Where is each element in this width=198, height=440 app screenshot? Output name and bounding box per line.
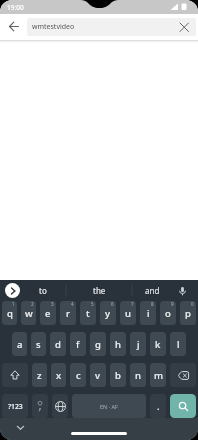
button[interactable]: c [70,363,86,387]
button[interactable]: g [90,332,106,356]
staticText: ?123 [8,402,23,411]
button[interactable]: p [180,301,196,325]
staticText: d [55,338,61,351]
button[interactable] [13,421,28,436]
button[interactable]: ?123 [2,394,28,418]
button[interactable]: EN · AF [72,394,146,418]
button[interactable]: v [90,363,106,387]
staticText: s [36,338,41,351]
button[interactable]: a [12,332,27,356]
button[interactable]: wmtestvideo [27,18,196,36]
button[interactable]: s [31,332,46,356]
staticText: r [66,307,71,320]
button[interactable]: x [51,363,66,387]
button[interactable]: the [66,280,132,301]
staticText: 9 [171,301,174,307]
staticText: and [145,285,160,296]
button[interactable]: f [70,332,86,356]
staticText: b [115,369,121,382]
staticText: z [37,369,42,382]
button[interactable]: r [60,301,76,325]
button[interactable]: m [150,363,166,387]
button[interactable] [5,283,20,298]
staticText: 2 [31,301,34,307]
button[interactable]: and [132,280,172,301]
staticText: p [185,307,191,320]
staticText: q [7,307,13,320]
staticText: l [177,338,180,351]
button[interactable]: u [120,301,136,325]
staticText: to [39,285,47,296]
staticText: e [45,307,51,320]
staticText: 5 [91,301,94,307]
staticText: w [25,307,33,320]
button[interactable] [170,394,196,418]
staticText: 0 [191,301,194,307]
button[interactable]: t [80,301,96,325]
button[interactable]: to [20,280,66,301]
staticText: 19:00 [7,3,24,12]
staticText: g [95,338,101,351]
staticText: x [56,369,62,382]
staticText: k [155,338,161,351]
staticText: i [147,307,150,320]
button[interactable] [32,394,48,418]
staticText: t [86,307,90,320]
staticText: EN · AF [100,403,118,410]
staticText: n [135,369,141,382]
button[interactable]: w [21,301,36,325]
staticText: m [154,369,163,382]
button[interactable]: j [130,332,146,356]
staticText: h [115,338,121,351]
staticText: y [105,307,111,320]
button[interactable]: k [150,332,166,356]
staticText: a [17,338,23,351]
staticText: c [76,369,81,382]
button[interactable]: b [110,363,126,387]
button[interactable] [175,284,189,298]
button[interactable]: h [110,332,126,356]
staticText: o [165,307,171,320]
button[interactable]: q [2,301,17,325]
button[interactable] [2,363,28,387]
staticText: v [95,369,101,382]
staticText: 1 [12,301,15,307]
button[interactable]: n [130,363,146,387]
button[interactable]: l [170,332,186,356]
button[interactable] [178,21,190,33]
button[interactable]: y [100,301,116,325]
button[interactable]: o [160,301,176,325]
button[interactable] [52,394,68,418]
button[interactable]: i [140,301,156,325]
staticText: j [137,338,140,351]
button[interactable] [5,18,23,36]
button[interactable]: d [50,332,66,356]
button[interactable] [71,432,127,435]
staticText: 4 [71,301,74,307]
staticText: 8 [151,301,154,307]
staticText: f [76,338,80,351]
button[interactable]: e [40,301,56,325]
staticText: 6 [111,301,114,307]
button[interactable]: z [32,363,47,387]
staticText: the [93,285,106,296]
staticText: u [125,307,131,320]
staticText: 7 [131,301,134,307]
staticText: . [157,400,160,413]
staticText: 3 [51,301,54,307]
button[interactable] [170,363,196,387]
button[interactable]: . [150,394,166,418]
staticText: wmtestvideo [32,22,75,32]
